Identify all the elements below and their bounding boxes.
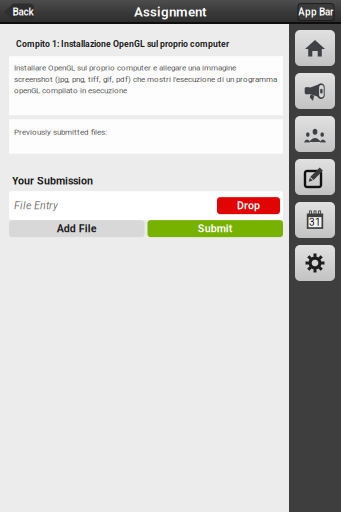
- staticText: Add File: [57, 222, 97, 235]
- staticText: App Bar: [298, 6, 334, 18]
- button[interactable]: Settings: [295, 245, 335, 281]
- staticText: Your Submission: [12, 175, 93, 187]
- staticText: Assignment: [134, 4, 207, 20]
- staticText: 31: [309, 216, 321, 228]
- staticText: Submit: [198, 222, 233, 235]
- staticText: File Entry: [14, 199, 58, 212]
- staticText: Compito 1: Installazione OpenGL sul prop…: [16, 39, 229, 49]
- button[interactable]: Calendar: [295, 202, 335, 238]
- button[interactable]: Compose: [295, 159, 335, 195]
- button[interactable]: Back: [4, 3, 36, 20]
- button[interactable]: Drop: [217, 197, 280, 214]
- staticText: Back: [12, 6, 33, 18]
- staticText: Drop: [237, 199, 260, 212]
- staticText: Previously submitted files:: [14, 127, 107, 137]
- button[interactable]: Add File: [9, 220, 144, 237]
- button[interactable]: People: [295, 116, 335, 152]
- button[interactable]: Home: [295, 30, 335, 66]
- button[interactable]: App Bar: [298, 3, 334, 20]
- button[interactable]: Announcements: [295, 73, 335, 109]
- staticText: Installare OpenGL sul proprio computer e…: [14, 63, 277, 95]
- button[interactable]: Submit: [147, 220, 283, 237]
